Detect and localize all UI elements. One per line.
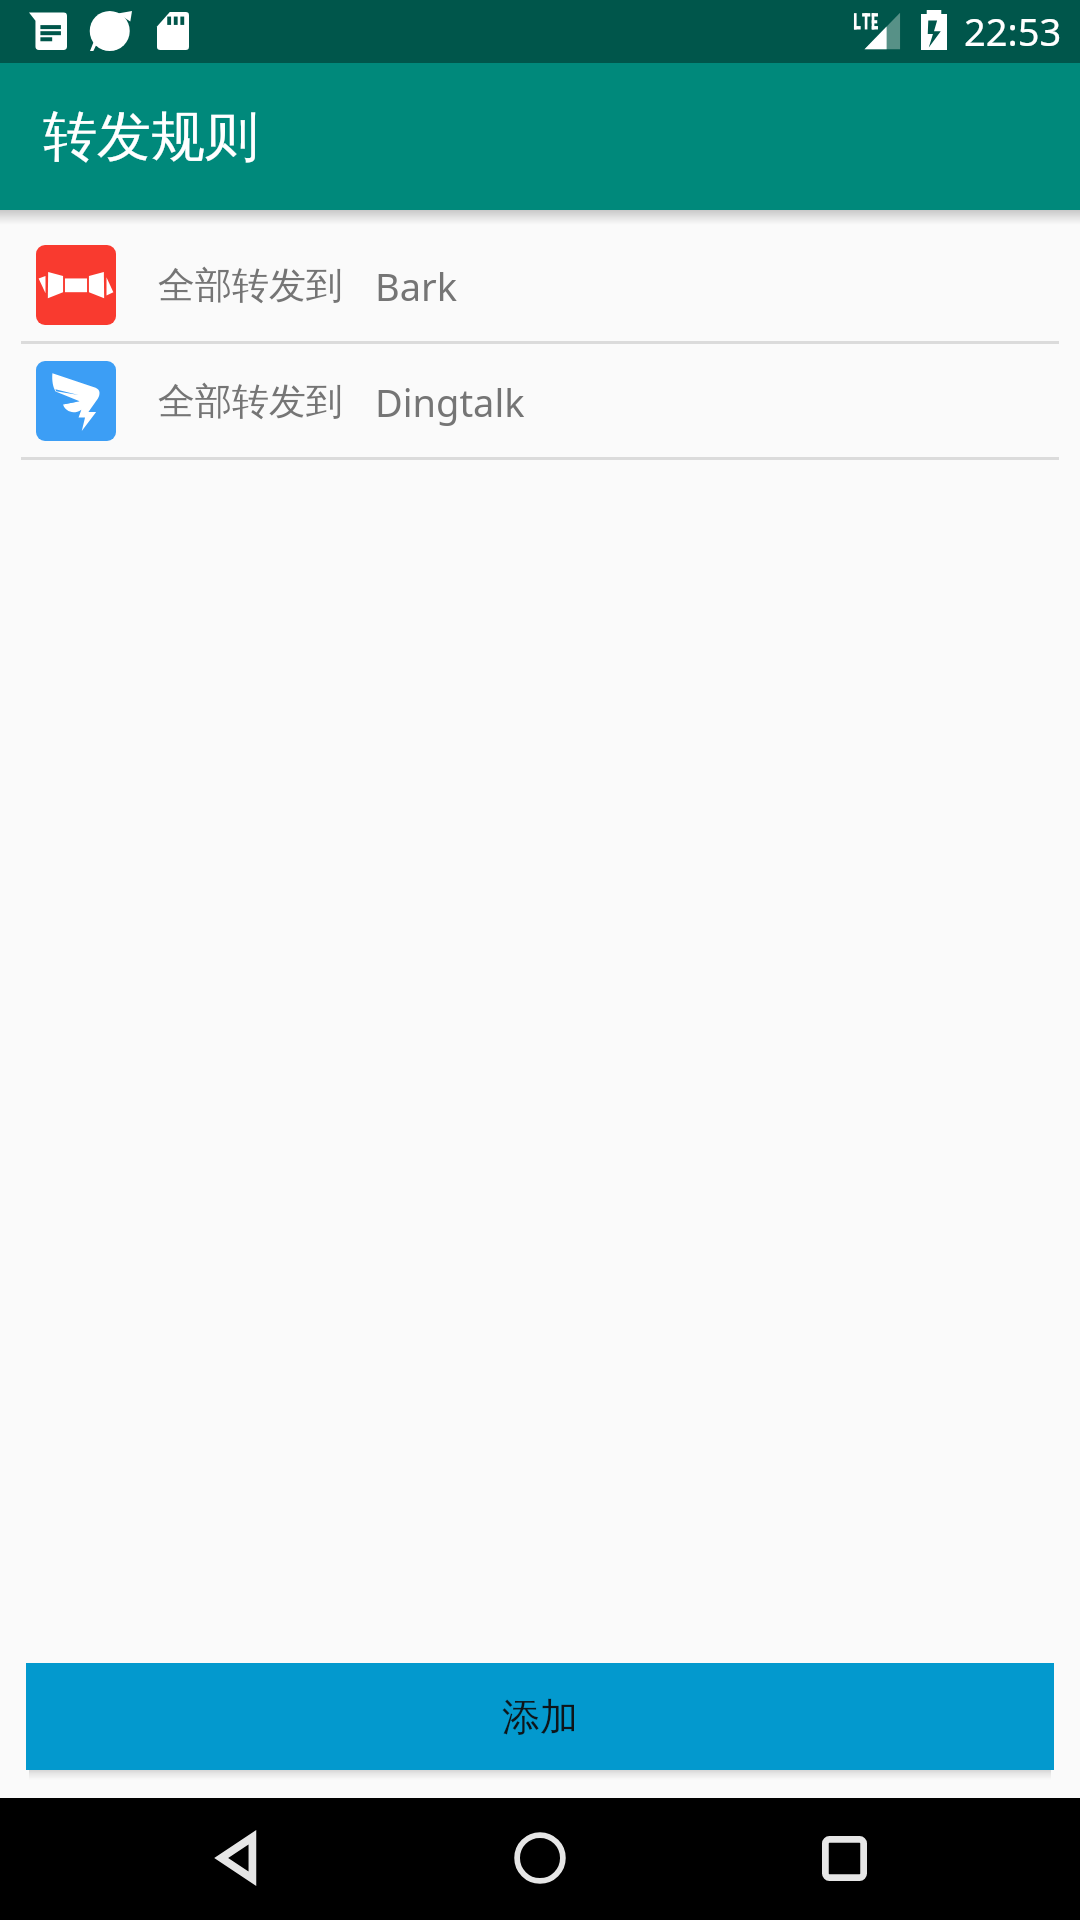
staticText: 添加	[502, 1693, 578, 1741]
staticText: 转发规则	[43, 103, 259, 171]
staticText: Bark	[375, 260, 458, 312]
staticText: 22:53	[964, 5, 1062, 57]
button[interactable]: Home	[480, 1798, 600, 1918]
button[interactable]: 添加	[26, 1663, 1054, 1770]
button[interactable]: 全部转发到	[0, 228, 1080, 341]
staticText: Dingtalk	[375, 376, 525, 428]
button[interactable]: 全部转发到	[0, 344, 1080, 457]
button[interactable]: Recent apps	[784, 1798, 904, 1918]
button[interactable]: Back	[177, 1798, 297, 1918]
staticText: 全部转发到	[158, 262, 343, 309]
staticText: 全部转发到	[158, 378, 343, 425]
